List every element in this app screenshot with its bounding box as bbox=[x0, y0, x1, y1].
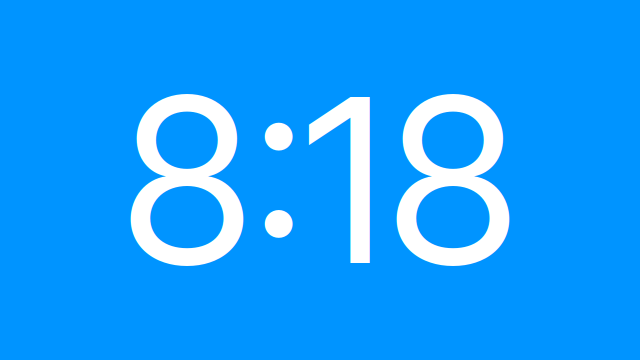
staticText: 8:18 bbox=[120, 42, 519, 318]
